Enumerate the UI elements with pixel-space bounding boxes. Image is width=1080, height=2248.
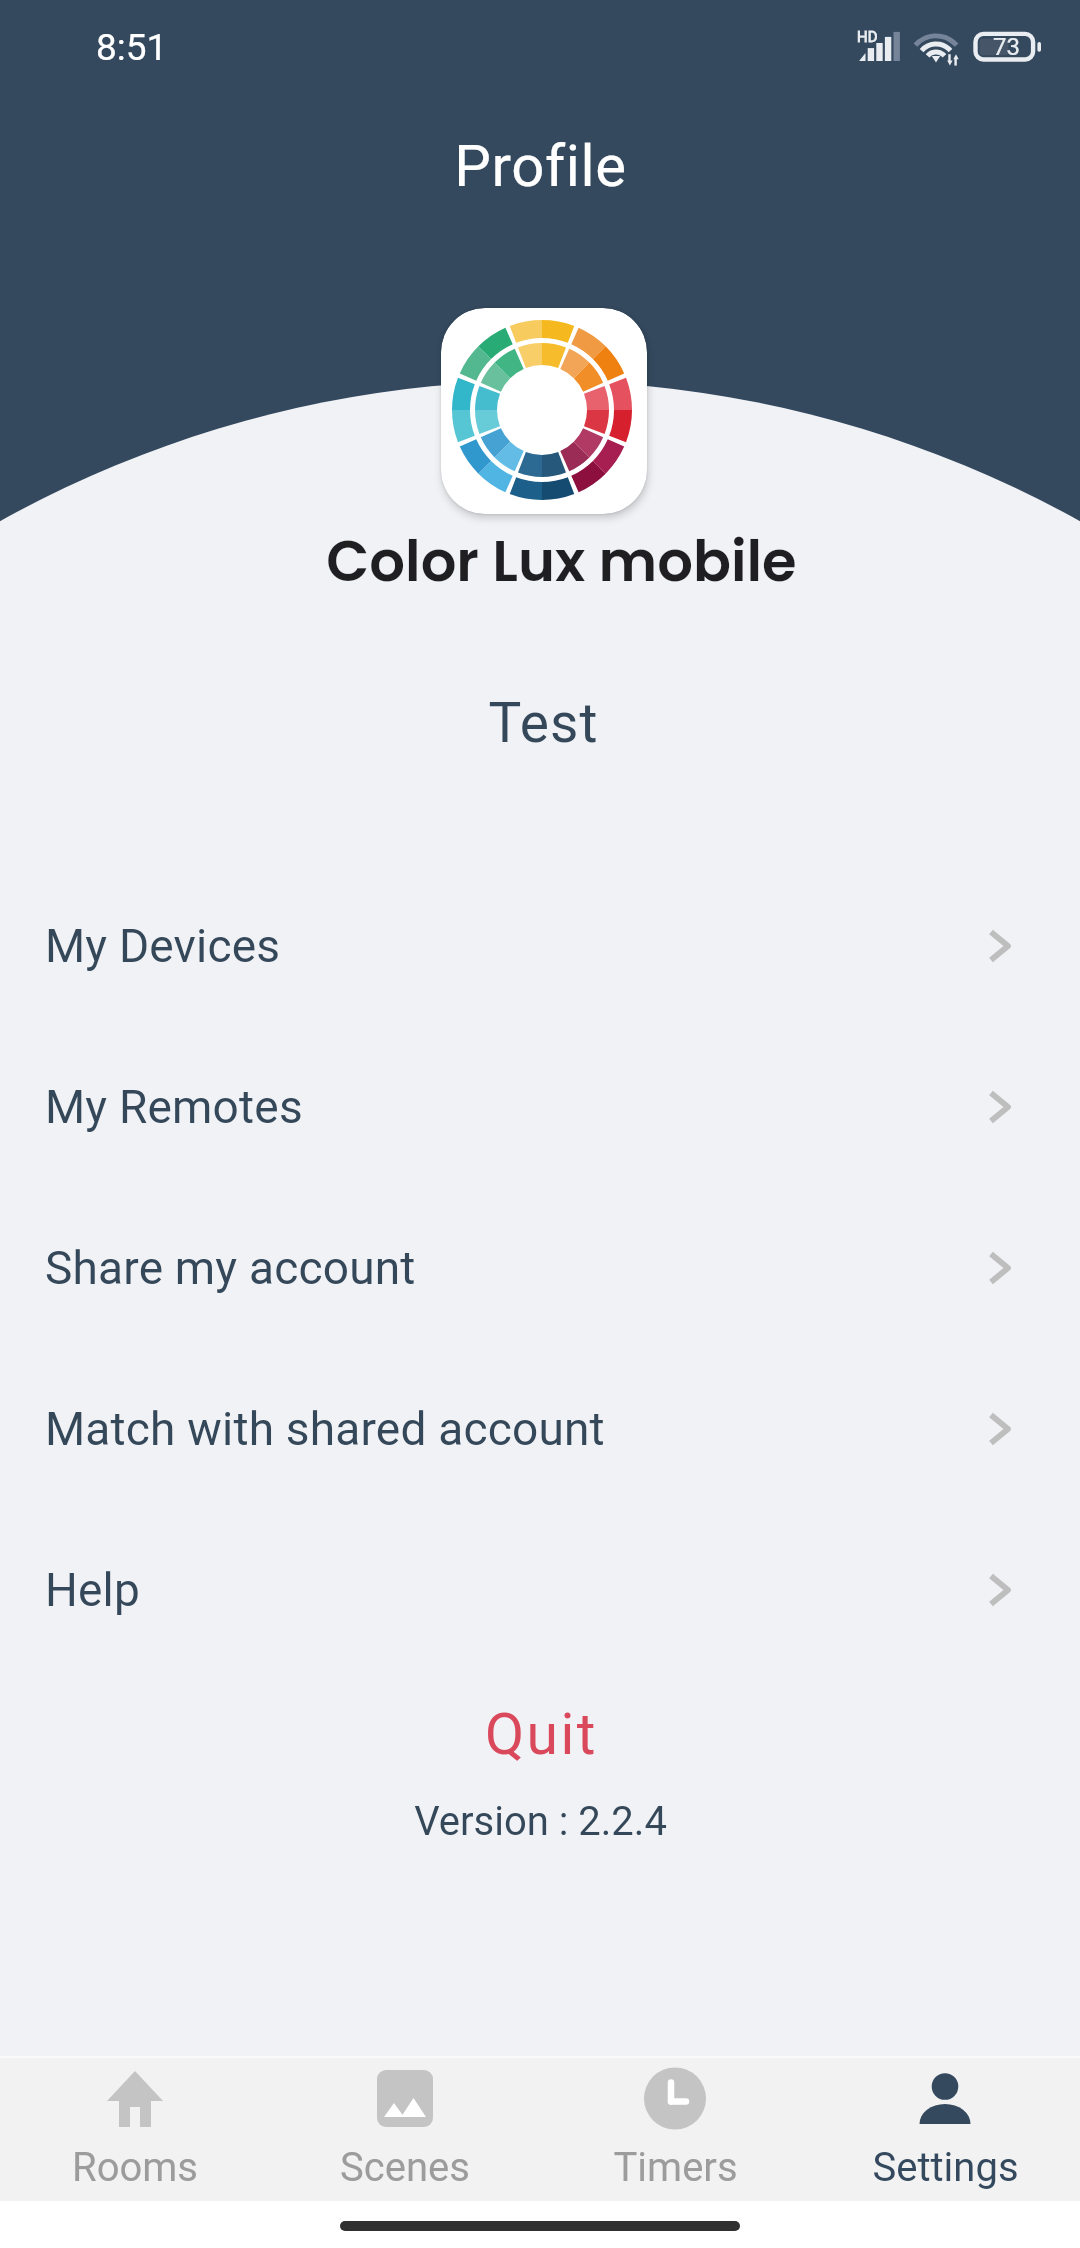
staticText: HD — [857, 28, 878, 46]
staticText: Rooms — [72, 2144, 198, 2191]
button[interactable]: Share my account — [0, 1187, 1080, 1348]
button[interactable]: My Devices — [0, 865, 1080, 1026]
button[interactable]: Help — [0, 1509, 1080, 1670]
staticText: My Remotes — [45, 1080, 303, 1134]
staticText: Timers — [613, 2144, 738, 2191]
staticText: Quit — [485, 1701, 598, 1768]
staticText: Scenes — [340, 2144, 470, 2191]
button[interactable]: Timers — [540, 2056, 810, 2201]
button[interactable]: Match with shared account — [0, 1348, 1080, 1509]
staticText: Color Lux mobile — [326, 522, 797, 598]
staticText: My Devices — [45, 919, 281, 973]
staticText: Settings — [872, 2144, 1019, 2191]
staticText: Version : 2.2.4 — [414, 1798, 667, 1845]
staticText: Profile — [454, 132, 627, 200]
button[interactable]: Scenes — [270, 2056, 540, 2201]
button[interactable]: Rooms — [0, 2056, 270, 2201]
button[interactable]: Settings — [810, 2056, 1080, 2201]
staticText: Share my account — [45, 1241, 416, 1295]
button[interactable]: Quit — [421, 1695, 661, 1773]
staticText: Help — [45, 1563, 141, 1617]
staticText: 73 — [993, 33, 1020, 61]
staticText: Test — [488, 691, 599, 755]
staticText: Match with shared account — [45, 1402, 605, 1456]
staticText: 8:51 — [96, 26, 168, 69]
button[interactable]: My Remotes — [0, 1026, 1080, 1187]
